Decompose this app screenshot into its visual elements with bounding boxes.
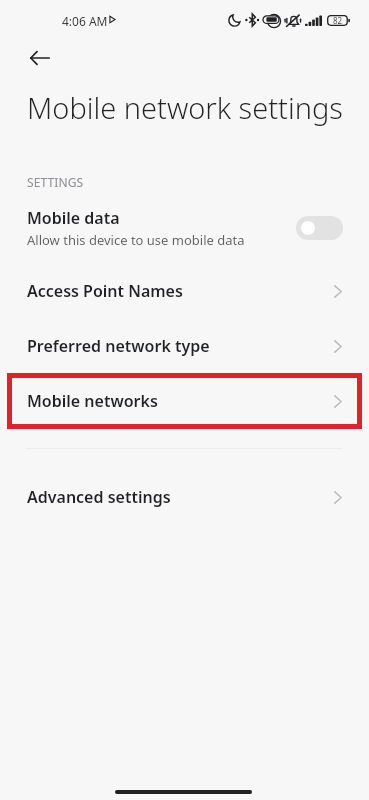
staticText: SETTINGS [27, 174, 84, 190]
staticText: Advanced settings [27, 486, 334, 508]
button[interactable]: Preferred network type [0, 323, 369, 369]
button[interactable]: Mobile networks [0, 378, 369, 424]
staticText: Mobile network settings [27, 88, 343, 127]
button[interactable]: Advanced settings [0, 474, 369, 520]
staticText: Allow this device to use mobile data [27, 231, 245, 249]
staticText: Preferred network type [27, 335, 334, 357]
staticText: 4:06 AM [62, 13, 108, 29]
staticText: Access Point Names [27, 280, 334, 302]
button[interactable]: Mobile data switch, off [296, 216, 343, 240]
button[interactable]: Access Point Names [0, 268, 369, 314]
staticText: 82 [333, 15, 343, 26]
staticText: Mobile data [27, 207, 120, 229]
button[interactable]: Back [18, 44, 62, 72]
button[interactable]: Mobile data [0, 205, 369, 251]
staticText: Mobile networks [27, 390, 334, 412]
